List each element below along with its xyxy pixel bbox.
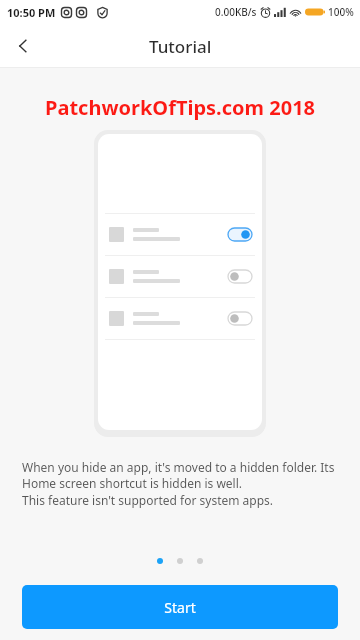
staticText: This feature isn't supported for system …	[22, 492, 274, 508]
staticText: 10:50 PM	[7, 5, 56, 20]
staticText: PatchworkOfTips.com 2018	[45, 94, 316, 121]
button[interactable]	[98, 256, 262, 297]
button[interactable]: Start	[22, 585, 338, 629]
staticText: 100%	[328, 5, 354, 19]
staticText: When you hide an app, it's moved to a hi…	[22, 459, 338, 492]
button[interactable]	[98, 298, 262, 339]
button[interactable]	[98, 214, 262, 255]
button[interactable]: Back	[0, 24, 46, 68]
staticText: 0.00KB/s	[215, 5, 257, 19]
staticText: Start	[164, 598, 196, 617]
staticText: Tutorial	[149, 35, 212, 58]
